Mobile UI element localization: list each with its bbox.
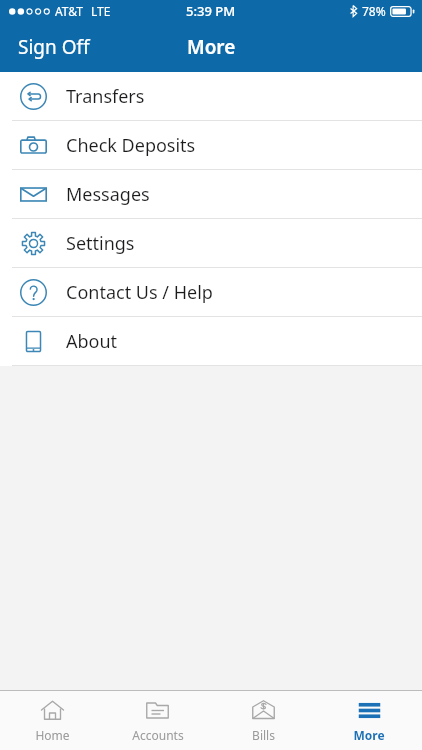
staticText: 5:39 PM [186,2,236,20]
staticText: Accounts [132,727,184,743]
button[interactable]: Home [0,691,105,750]
staticText: Check Deposits [66,133,196,158]
staticText: 78% [362,3,386,19]
button[interactable]: Contact Us / Help [0,268,422,316]
staticText: Settings [66,231,135,256]
staticText: More [187,34,236,60]
button[interactable]: Messages [0,170,422,218]
staticText: Transfers [66,84,145,109]
button[interactable]: About [0,317,422,365]
staticText: More [353,727,385,743]
staticText: Sign Off [18,34,90,60]
staticText: About [66,329,118,354]
button[interactable]: Bills [210,691,316,750]
button[interactable]: Accounts [105,691,210,750]
staticText: Messages [66,182,150,207]
button[interactable]: Settings [0,219,422,267]
staticText: Contact Us / Help [66,280,213,305]
staticText: AT&T [55,3,83,19]
button[interactable]: Check Deposits [0,121,422,169]
button[interactable]: More [316,691,422,750]
button[interactable]: Transfers [0,72,422,120]
staticText: Home [35,727,70,743]
staticText: LTE [91,3,111,19]
staticText: Bills [252,727,275,743]
button[interactable]: Sign Off [0,22,108,72]
